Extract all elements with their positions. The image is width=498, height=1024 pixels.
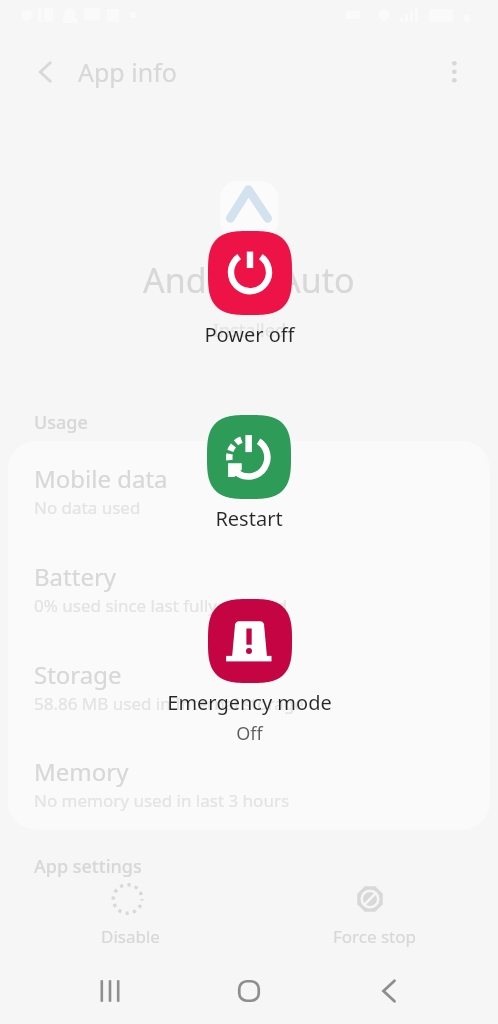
staticText: Android Auto [143, 257, 355, 303]
staticText: Disable [101, 925, 160, 948]
staticText: Power off [204, 321, 295, 348]
staticText: No data used [34, 496, 141, 519]
staticText: No memory used in last 3 hours [34, 789, 290, 812]
staticText: Usage [34, 410, 88, 435]
staticText: 0% used since last fully charged [34, 594, 287, 617]
button[interactable]: Restart [207, 415, 291, 532]
staticText: Battery [34, 560, 117, 593]
button[interactable]: Navigate up [22, 50, 66, 94]
button[interactable]: Home [221, 964, 277, 1020]
button[interactable]: Disable [100, 879, 156, 935]
button[interactable]: Emergency mode [167, 599, 332, 746]
staticText: Restart [215, 505, 283, 532]
button[interactable]: More options [434, 52, 474, 92]
button[interactable]: Force stop [342, 879, 398, 935]
button[interactable]: Recent apps [82, 964, 138, 1020]
button[interactable]: Power off [204, 231, 295, 348]
staticText: Force stop [333, 925, 416, 948]
staticText: App info [78, 55, 177, 89]
staticText: 58.86 MB used in Internal storage [34, 692, 304, 715]
staticText: App settings [34, 854, 142, 879]
staticText: Memory [34, 755, 129, 788]
staticText: Mobile data [34, 462, 168, 495]
staticText: Storage [34, 658, 122, 691]
staticText: Off [236, 721, 263, 746]
staticText: Emergency mode [167, 689, 332, 716]
button[interactable]: Back [360, 964, 416, 1020]
staticText: Installed [213, 318, 286, 343]
